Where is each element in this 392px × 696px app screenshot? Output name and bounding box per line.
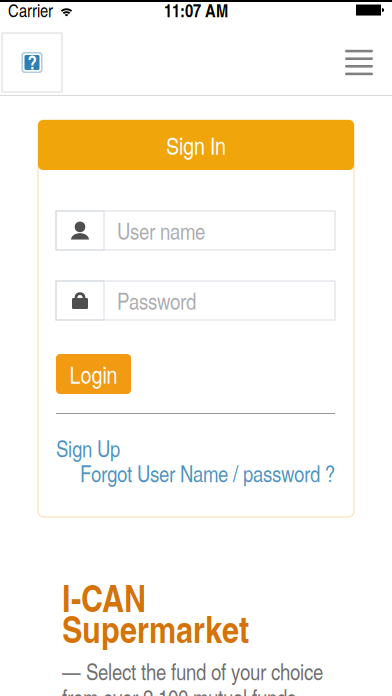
staticText: Supermarket [62,602,249,654]
staticText: Password [117,285,196,316]
staticText: Sign Up [56,432,120,464]
staticText: User name [117,215,205,246]
button[interactable]: Home [2,33,62,92]
staticText: ? [27,49,36,75]
staticText: Carrier [8,0,53,22]
staticText: Forgot User Name / password ? [80,457,335,489]
button[interactable]: User name [56,211,335,250]
button[interactable]: Login [56,354,131,394]
staticText: from over 2,100 mutual funds. [62,681,301,696]
button[interactable]: Sign Up [56,437,126,458]
staticText: Login [69,357,117,390]
staticText: I-CAN [62,571,146,623]
button[interactable]: Menu [337,33,381,92]
staticText: 11:07 AM [164,0,228,23]
staticText: Sign In [166,128,226,161]
button[interactable]: Password [56,281,335,320]
staticText: — Select the fund of your choice [62,655,323,687]
button[interactable]: Forgot User Name / password ? [77,462,335,483]
